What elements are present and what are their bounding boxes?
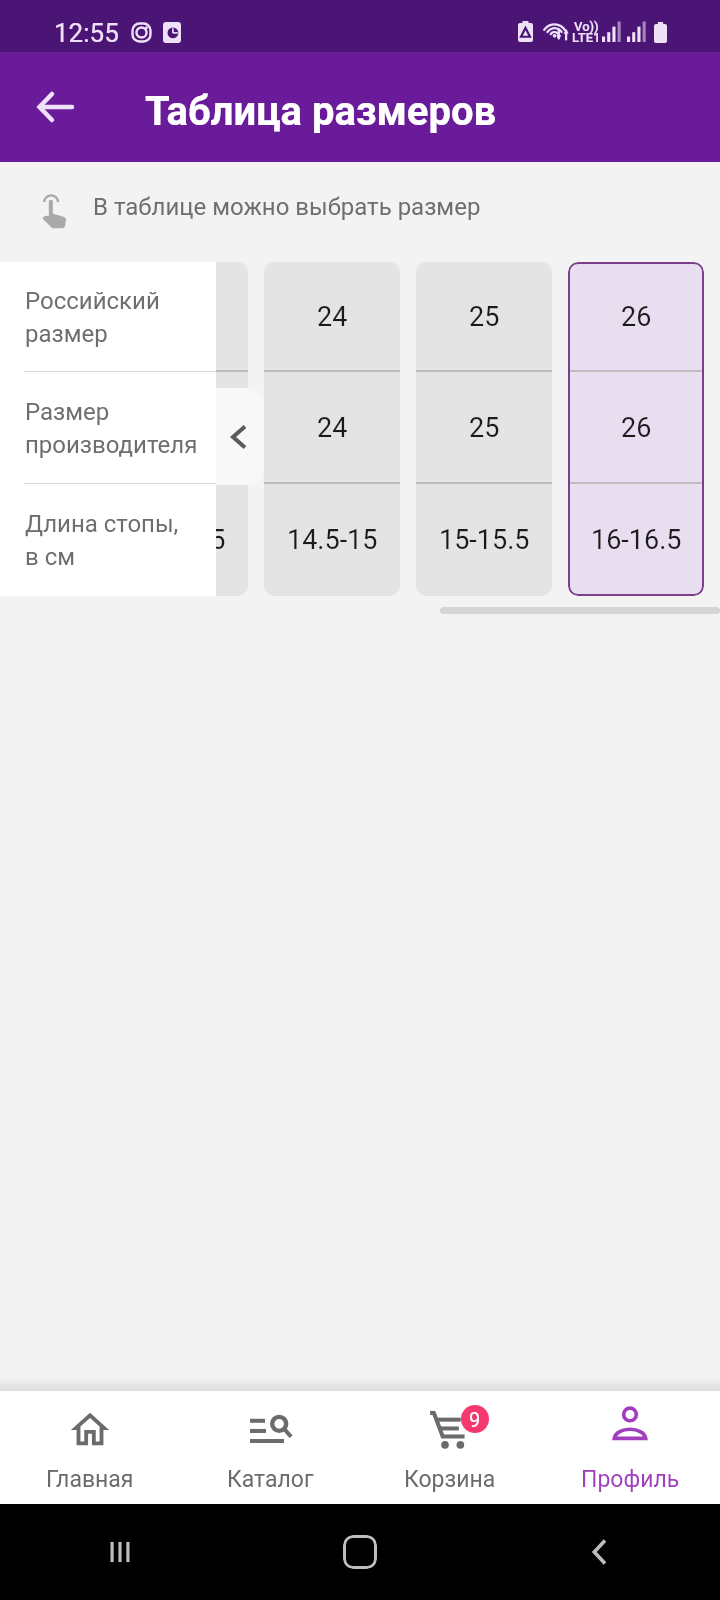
staticText: 26 [621,301,652,333]
staticText: 25 [469,301,500,333]
staticText: 15-15.5 [439,524,530,556]
staticText: 25 [469,412,500,444]
staticText: Каталог [227,1466,314,1493]
staticText: LTE1 [572,30,601,45]
staticText: Размер производителя [25,398,198,459]
staticText: Профиль [581,1466,680,1493]
button[interactable]: 23 [112,262,248,596]
staticText: 26 [621,412,652,444]
staticText: Vo)) [574,19,599,34]
staticText: В таблице можно выбрать размер [93,193,481,221]
staticText: 23 [165,412,196,444]
staticText: 14.5-15 [287,524,378,556]
staticText: 16-16.5 [591,524,682,556]
button[interactable]: 26 [568,262,704,596]
button[interactable]: Back [24,75,88,139]
staticText: Главная [46,1466,134,1493]
staticText: Корзина [404,1466,496,1493]
button[interactable]: 25 [416,262,552,596]
staticText: 9 [469,1408,481,1431]
staticText: 12:55 [54,18,119,48]
button[interactable]: 24 [264,262,400,596]
button[interactable]: Каталог [180,1391,360,1504]
staticText: 13-13.5 [135,524,226,556]
staticText: 24 [317,301,348,333]
button[interactable]: 9 [360,1391,540,1504]
staticText: Российский размер [25,287,160,348]
button[interactable]: Главная [0,1391,180,1504]
staticText: Таблица размеров [145,88,497,135]
staticText: Длина стопы, в см [25,510,179,571]
button[interactable]: Collapse columns [216,388,264,485]
button[interactable]: Профиль [540,1391,720,1504]
staticText: 24 [317,412,348,444]
